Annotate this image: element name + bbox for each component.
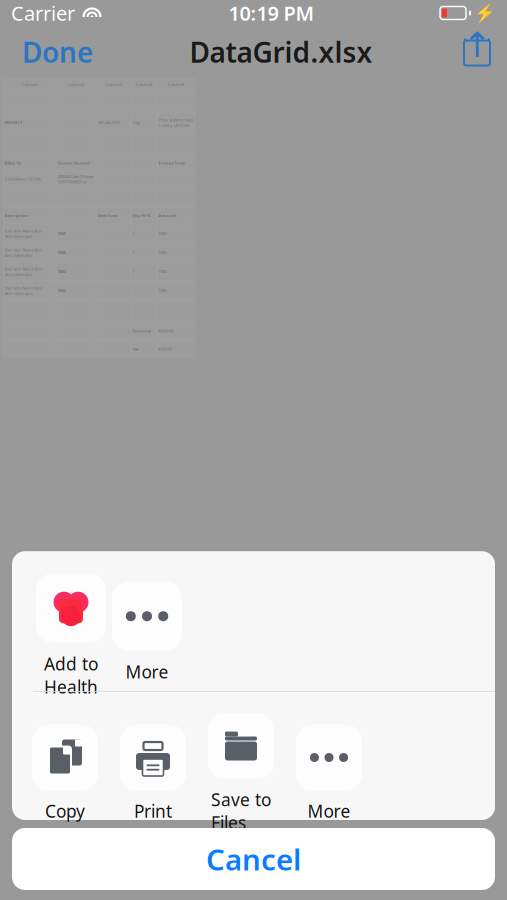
- staticText: Cancel: [206, 839, 301, 878]
- staticText: Print: [134, 799, 172, 822]
- button[interactable]: More: [109, 581, 185, 699]
- staticText: INVOICE: [4, 120, 22, 125]
- button[interactable]: Copy: [21, 724, 109, 831]
- button[interactable]: Save to Files: [197, 713, 285, 843]
- staticText: DataGrid.xlsx: [189, 33, 372, 71]
- staticText: 1000: [158, 269, 166, 274]
- staticText: Qty Hr R: [132, 213, 150, 218]
- staticText: 1000: [57, 288, 65, 293]
- staticText: Invoice Total: [158, 160, 184, 166]
- staticText: City,: [132, 120, 140, 125]
- button[interactable]: Cancel: [12, 828, 495, 890]
- staticText: Add to Health: [44, 652, 98, 698]
- staticText: 1000: [57, 269, 65, 274]
- staticText: Client Name 1Client: [4, 176, 40, 182]
- button[interactable]: Done: [10, 25, 105, 79]
- staticText: Carrier: [11, 0, 75, 26]
- staticText: 1000: [57, 231, 65, 236]
- staticText: $4000.00: [158, 328, 173, 334]
- staticText: ⚡: [474, 3, 496, 23]
- staticText: 647-444-1234: [97, 120, 119, 125]
- button[interactable]: Print: [109, 724, 197, 831]
- button[interactable]: Share: [457, 32, 497, 72]
- staticText: Subtotal: [132, 328, 150, 334]
- staticText: ↑: [462, 25, 491, 65]
- staticText: More: [307, 799, 350, 822]
- staticText: Copy: [45, 799, 85, 822]
- staticText: Billed To: [4, 160, 21, 166]
- staticText: Column4: [136, 82, 152, 87]
- staticText: Your item Name Item description goes: [4, 266, 42, 277]
- staticText: 1: [132, 250, 134, 255]
- staticText: Your item Name Item description goes: [4, 247, 42, 258]
- staticText: Tax: [132, 346, 138, 352]
- staticText: Description: [4, 213, 28, 218]
- staticText: 000000 Date Of Issue 10/07/1434525.oo: [57, 174, 93, 184]
- staticText: Done: [22, 33, 93, 71]
- button[interactable]: Add to Health: [33, 573, 109, 707]
- staticText: 1000: [158, 250, 166, 255]
- staticText: Unit Cost: [97, 213, 117, 218]
- staticText: Column1: [21, 82, 37, 87]
- staticText: 1000: [57, 250, 65, 255]
- staticText: Amount: [158, 213, 176, 218]
- staticText: Column2: [68, 82, 84, 87]
- staticText: Column5: [168, 82, 184, 87]
- staticText: $520.00: [158, 346, 171, 352]
- staticText: 10:19 PM: [228, 0, 314, 26]
- staticText: Your item Name Item description goes: [4, 228, 42, 239]
- staticText: 1000: [158, 231, 166, 236]
- staticText: Save to Files: [211, 788, 271, 834]
- staticText: Column3: [105, 82, 121, 87]
- staticText: 1Your Address State, Country ZIP CODE: [158, 117, 194, 128]
- staticText: More: [125, 660, 168, 683]
- button[interactable]: More: [285, 724, 373, 831]
- staticText: Your item Name Item description goes: [4, 285, 42, 296]
- staticText: 1: [132, 231, 134, 236]
- staticText: 1000: [158, 288, 166, 293]
- staticText: 1: [132, 269, 134, 274]
- staticText: Invoice Number: [57, 160, 90, 166]
